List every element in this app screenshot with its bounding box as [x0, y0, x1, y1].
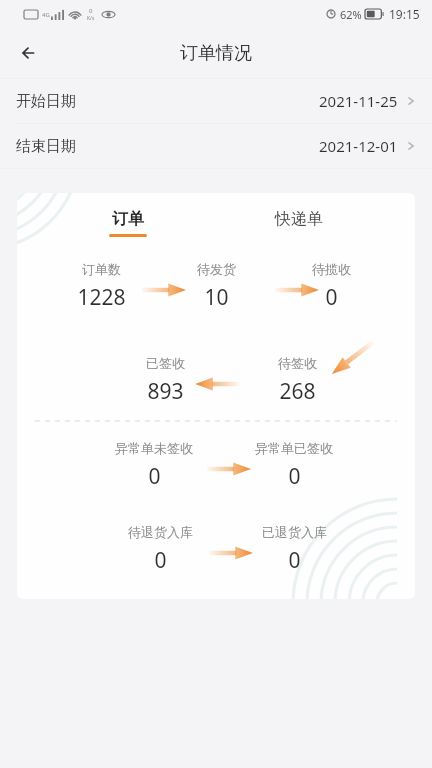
button[interactable]: 待揽收	[271, 261, 391, 312]
button[interactable]: 待签收	[237, 355, 357, 406]
staticText: 快递单	[275, 209, 323, 229]
staticText: 2021-12-01	[319, 136, 398, 156]
staticText: 已签收	[146, 355, 185, 371]
button[interactable]: 开始日期	[0, 79, 432, 123]
button[interactable]: 订单	[103, 207, 153, 239]
staticText: 结束日期	[16, 137, 76, 156]
staticText: 0	[288, 462, 301, 491]
button[interactable]: 已退货入库	[229, 524, 359, 575]
button[interactable]: 待退货入库	[95, 524, 225, 575]
button[interactable]: 订单数	[41, 261, 161, 312]
button[interactable]: 快递单	[269, 207, 329, 239]
button[interactable]: 结束日期	[0, 124, 432, 168]
button[interactable]: Back	[8, 31, 52, 75]
button[interactable]: 待发货	[156, 261, 276, 312]
staticText: 2021-11-25	[319, 91, 398, 111]
staticText: 订单	[112, 209, 144, 229]
staticText: 0	[154, 546, 167, 575]
staticText: 1228	[77, 283, 126, 312]
button[interactable]: 已签收	[105, 355, 225, 406]
staticText: 开始日期	[16, 92, 76, 111]
staticText: 10	[204, 283, 229, 312]
staticText: 0	[148, 462, 161, 491]
staticText: 异常单已签收	[255, 440, 333, 456]
staticText: 异常单未签收	[115, 440, 193, 456]
staticText: 订单情况	[180, 42, 252, 65]
staticText: 62%	[340, 7, 362, 22]
staticText: 订单数	[82, 261, 121, 277]
staticText: 0	[89, 7, 93, 15]
button[interactable]: 异常单已签收	[229, 440, 359, 491]
staticText: 4G	[42, 11, 50, 19]
staticText: 已退货入库	[262, 524, 327, 540]
staticText: 893	[147, 377, 184, 406]
staticText: 268	[279, 377, 316, 406]
staticText: 0	[288, 546, 301, 575]
staticText: 待揽收	[312, 261, 351, 277]
staticText: 待退货入库	[128, 524, 193, 540]
staticText: 待签收	[278, 355, 317, 371]
staticText: 0	[325, 283, 338, 312]
staticText: 待发货	[197, 261, 236, 277]
button[interactable]: 异常单未签收	[89, 440, 219, 491]
staticText: K/s	[87, 15, 95, 22]
staticText: 19:15	[389, 6, 420, 22]
